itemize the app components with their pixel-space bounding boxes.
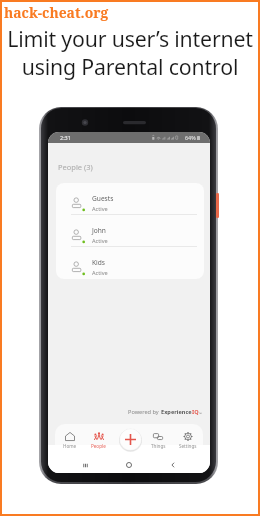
button[interactable]: People — [84, 424, 113, 454]
staticText: Active — [92, 205, 108, 213]
staticText: Settings — [179, 443, 197, 449]
button[interactable]: Settings — [173, 424, 203, 454]
staticText: Active — [92, 269, 108, 277]
staticText: ™ — [199, 411, 202, 416]
staticText: hack-cheat.org — [4, 3, 109, 22]
staticText: Experience — [161, 408, 192, 416]
button[interactable]: Back — [166, 458, 180, 472]
staticText: 64% — [185, 134, 196, 141]
staticText: Guests — [92, 194, 114, 203]
staticText: Things — [151, 443, 166, 449]
staticText: Powered by — [128, 408, 161, 416]
staticText: Active — [92, 237, 108, 245]
staticText: Limit your user’s internet using Parenta… — [7, 24, 253, 81]
staticText: John — [92, 226, 106, 235]
staticText: Kids — [92, 258, 105, 267]
staticText: Home — [63, 443, 77, 449]
button[interactable]: John — [56, 215, 204, 247]
button[interactable]: Home — [55, 424, 84, 454]
button[interactable]: Recents — [78, 458, 92, 472]
staticText: IQ — [192, 408, 199, 416]
staticText: 2:31 — [60, 134, 71, 141]
staticText: People — [91, 443, 106, 449]
button[interactable]: Home — [122, 458, 136, 472]
button[interactable]: Things — [143, 424, 173, 454]
button[interactable]: Add — [119, 428, 142, 451]
staticText: People (3) — [58, 162, 93, 172]
button[interactable]: Kids — [56, 247, 204, 279]
button[interactable]: Guests — [56, 183, 204, 215]
